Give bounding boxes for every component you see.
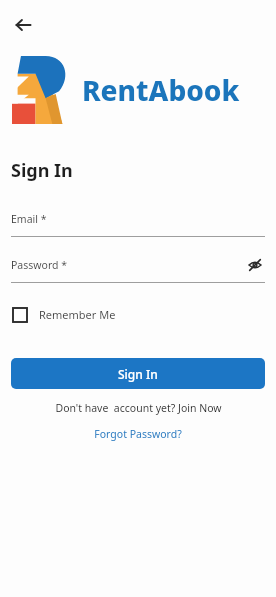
button[interactable]: Don't have account yet? Join Now	[51, 399, 226, 417]
staticText: RentAbook	[82, 71, 240, 109]
staticText: Forgot Password?	[94, 427, 182, 441]
button[interactable]: Show password	[245, 255, 265, 275]
button[interactable]: Remember Me	[11, 303, 118, 326]
staticText: Password *	[11, 258, 68, 272]
button[interactable]: Sign In	[11, 358, 265, 389]
staticText: Sign In	[11, 158, 73, 183]
staticText: Email *	[11, 212, 47, 226]
button[interactable]: Forgot Password?	[90, 425, 186, 443]
staticText: Remember Me	[39, 307, 116, 322]
button[interactable]: Back	[8, 10, 38, 40]
staticText: Don't have account yet? Join Now	[55, 401, 222, 415]
staticText: Sign In	[118, 366, 158, 382]
